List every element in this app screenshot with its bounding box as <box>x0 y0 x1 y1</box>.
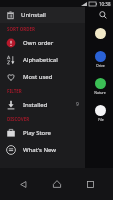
staticText: Own order <box>23 39 54 47</box>
staticText: Play Store <box>23 129 51 137</box>
button[interactable]: Most used <box>0 68 85 85</box>
staticText: Drive <box>96 63 105 68</box>
staticText: SORT ORDER <box>7 26 36 32</box>
staticText: DISCOVER <box>7 116 30 122</box>
staticText: Most used <box>23 73 53 81</box>
button[interactable]: Recent apps <box>79 173 101 195</box>
staticText: 9 <box>76 101 79 108</box>
button[interactable]: Nature <box>94 78 106 95</box>
staticText: File <box>98 117 104 122</box>
staticText: FILTER <box>7 88 22 94</box>
staticText: Nature <box>94 90 106 95</box>
button[interactable]: Play Store <box>0 124 85 141</box>
button[interactable]: Uninstall <box>0 7 85 23</box>
button[interactable]: What's New <box>0 141 85 158</box>
button[interactable]: App <box>95 28 106 39</box>
button[interactable]: Back <box>12 173 34 195</box>
button[interactable]: Alphabetical <box>0 51 85 68</box>
staticText: Alphabetical <box>23 56 58 64</box>
staticText: 10:38 <box>99 1 111 7</box>
button[interactable]: Search <box>97 9 109 21</box>
button[interactable]: File <box>95 105 106 122</box>
staticText: Installed <box>23 101 48 109</box>
staticText: What's New <box>23 146 57 154</box>
staticText: Uninstall <box>21 11 46 19</box>
button[interactable]: Home <box>46 173 68 195</box>
button[interactable]: Installed <box>0 96 85 113</box>
button[interactable]: Drive <box>95 51 106 68</box>
button[interactable]: Own order <box>0 34 85 51</box>
